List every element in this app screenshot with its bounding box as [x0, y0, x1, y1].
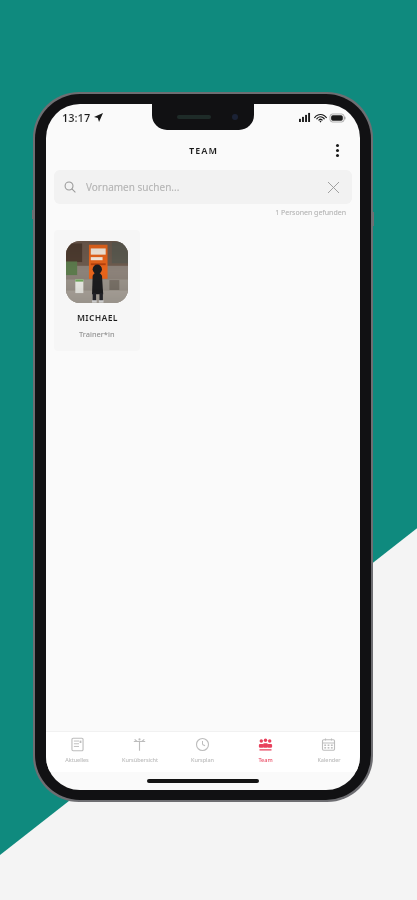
staticText: TEAM — [189, 144, 218, 156]
button[interactable]: Vornamen suchen... — [54, 170, 352, 204]
button[interactable]: Kursübersicht — [108, 732, 171, 772]
button[interactable]: More options — [320, 133, 354, 167]
button[interactable]: Clear search — [324, 178, 342, 196]
staticText: Team — [258, 756, 273, 763]
staticText: Aktuelles — [65, 756, 89, 763]
button[interactable]: Kalender — [297, 732, 360, 772]
button[interactable]: MICHAEL — [54, 230, 140, 351]
staticText: 13:17 — [62, 110, 91, 125]
staticText: 1 Personen gefunden — [46, 208, 346, 218]
staticText: Kalender — [317, 756, 341, 763]
staticText: MICHAEL — [77, 312, 118, 324]
staticText: Trainer*in — [79, 329, 115, 339]
button[interactable]: Aktuelles — [46, 732, 108, 772]
button[interactable]: Team — [234, 732, 297, 772]
staticText: Vornamen suchen... — [86, 180, 180, 194]
staticText: Kursplan — [191, 756, 214, 763]
button[interactable]: Kursplan — [171, 732, 234, 772]
staticText: Kursübersicht — [122, 756, 158, 763]
